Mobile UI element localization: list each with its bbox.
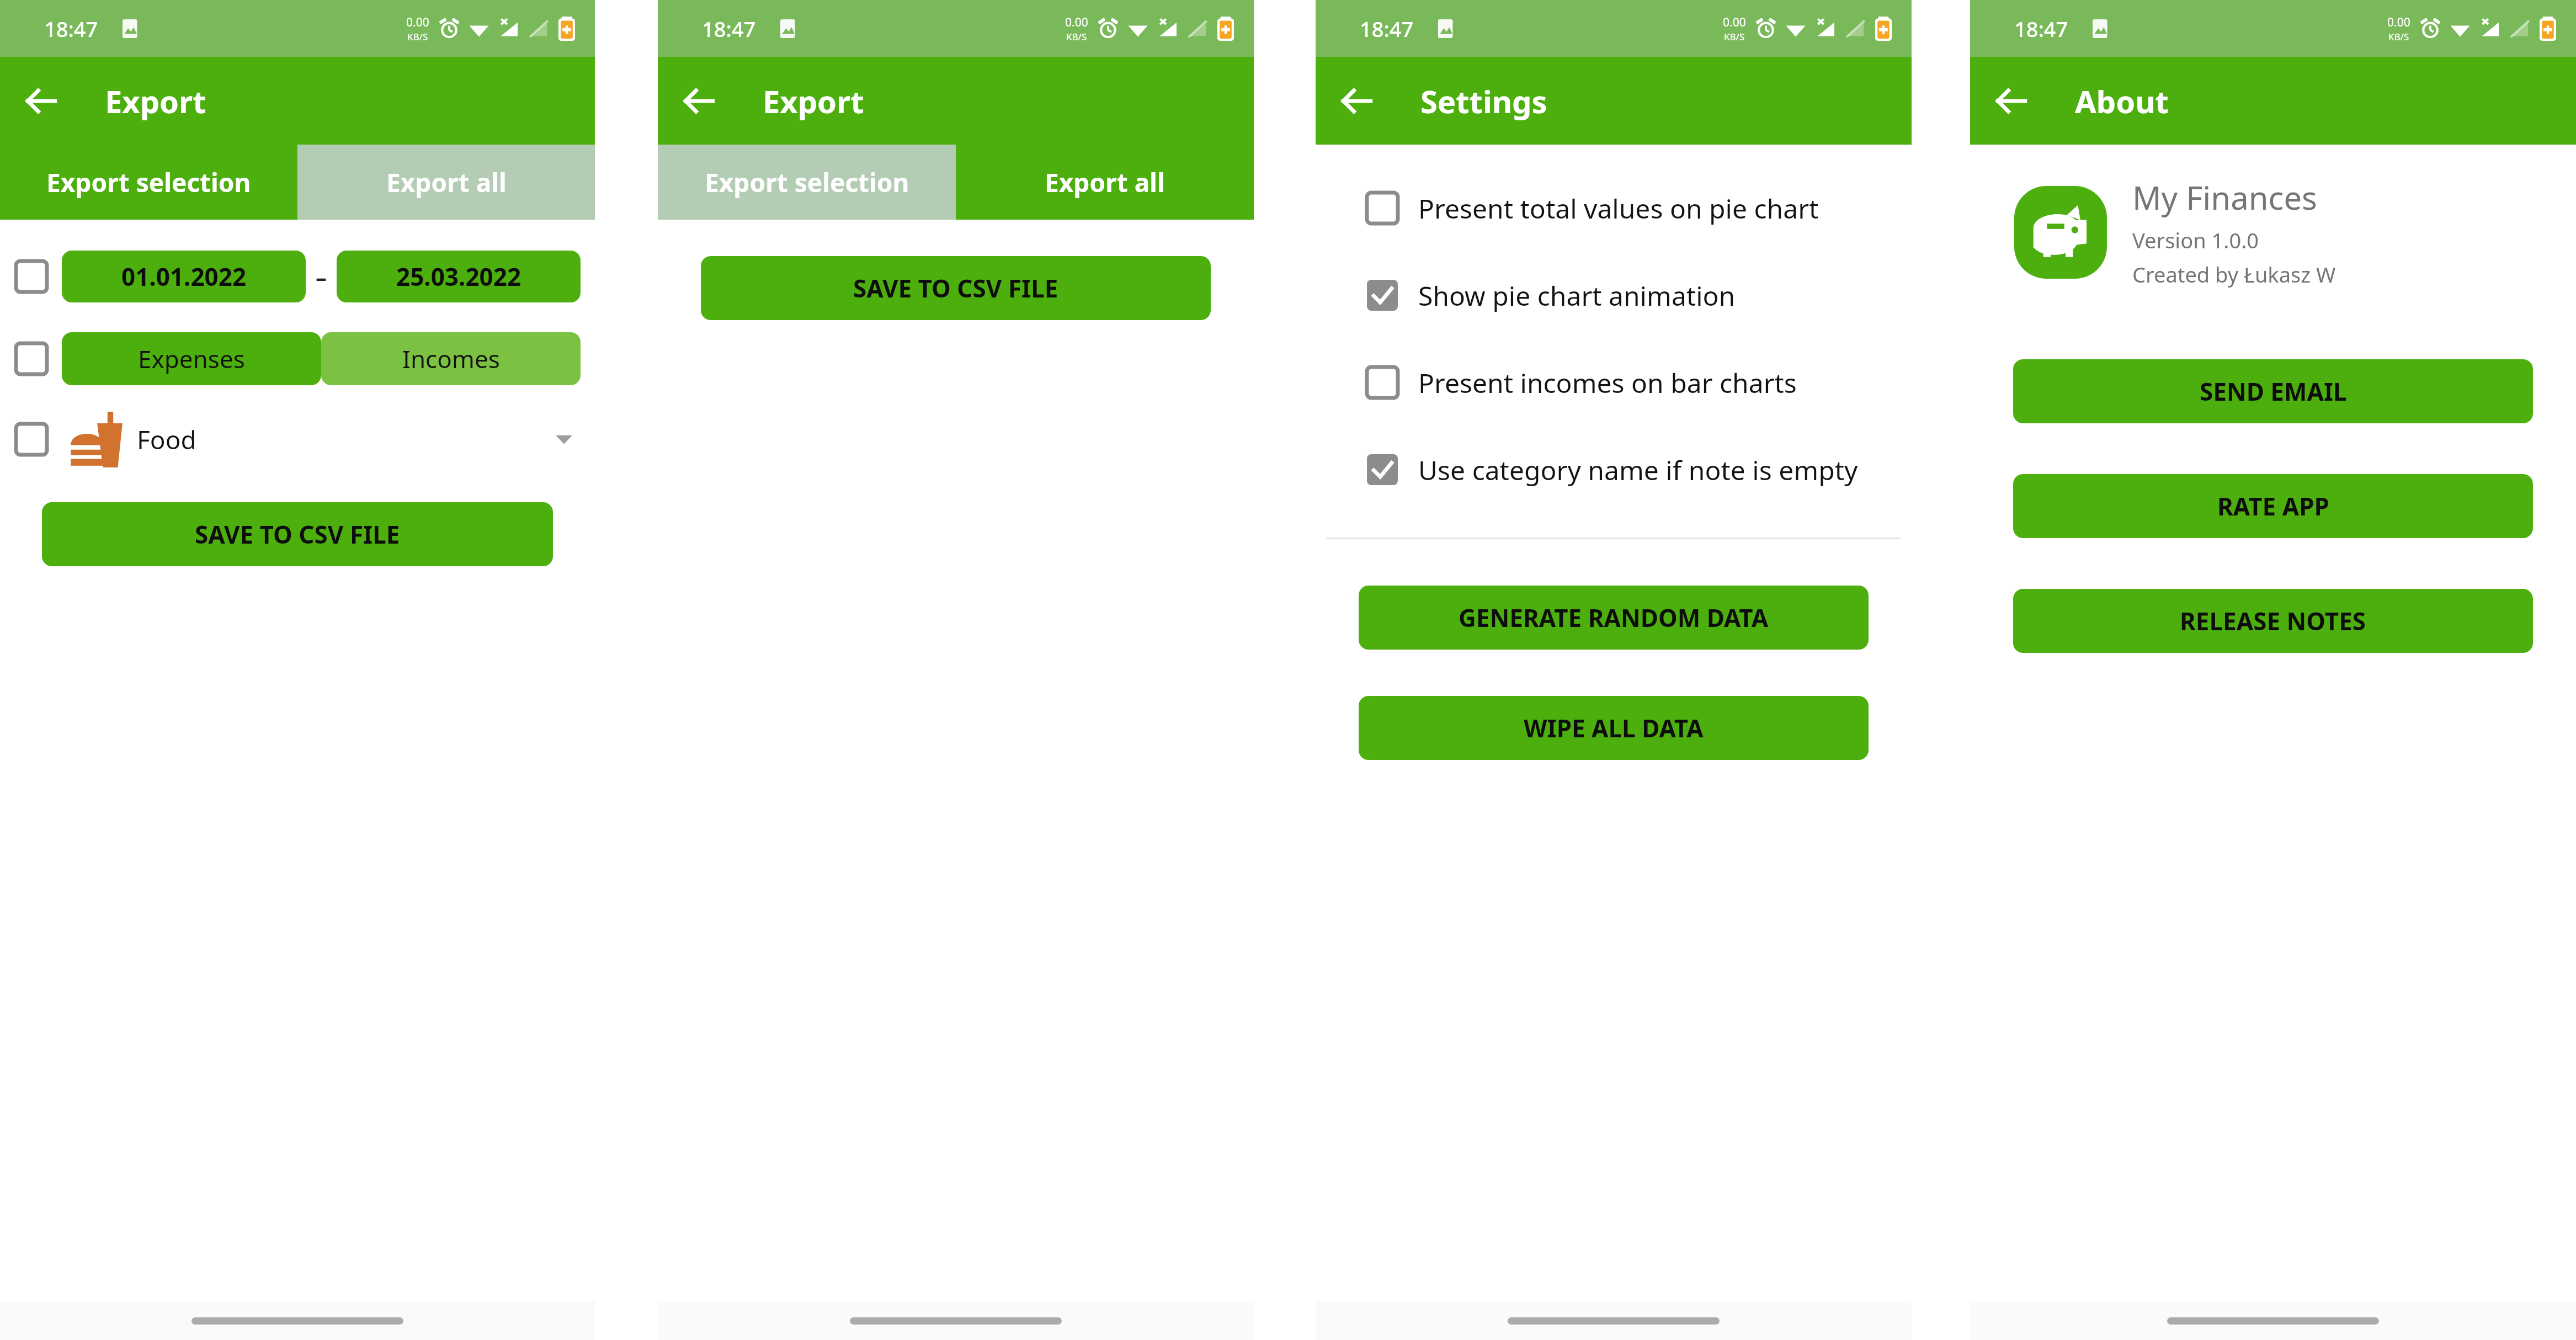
button[interactable]: WIPE ALL DATA <box>1359 696 1869 760</box>
button[interactable]: Incomes <box>321 332 581 385</box>
button[interactable]: Export all <box>297 145 595 220</box>
staticText: – <box>316 262 327 291</box>
button[interactable]: Checkbox <box>1316 426 1912 513</box>
button[interactable]: Expand category <box>547 423 581 456</box>
staticText: KB/S <box>1724 30 1745 43</box>
button[interactable]: Checkbox <box>1316 164 1912 252</box>
button[interactable]: Back <box>1987 76 2036 126</box>
button[interactable]: Export selection <box>658 145 956 220</box>
staticText: Use category name if note is empty <box>1418 452 1858 488</box>
button[interactable]: GENERATE RANDOM DATA <box>1359 586 1869 650</box>
staticText: Incomes <box>402 342 500 375</box>
staticText: 0.00 <box>2387 14 2410 30</box>
staticText: Present incomes on bar charts <box>1418 365 1797 401</box>
staticText: Expenses <box>138 342 245 375</box>
button[interactable]: SAVE TO CSV FILE <box>701 256 1211 320</box>
staticText: Export <box>763 80 864 122</box>
staticText: RATE APP <box>2217 490 2329 523</box>
staticText: KB/S <box>407 30 428 43</box>
staticText: 0.00 <box>1723 14 1746 30</box>
button[interactable]: Expenses <box>62 332 321 385</box>
button[interactable]: Checkbox <box>8 335 55 382</box>
staticText: 18:47 <box>702 14 756 43</box>
button[interactable]: Checkbox <box>8 416 55 463</box>
staticText: My Finances <box>2132 176 2317 219</box>
staticText: Export all <box>386 165 507 200</box>
button[interactable]: Export selection <box>0 145 297 220</box>
staticText: KB/S <box>2388 30 2409 43</box>
staticText: Settings <box>1420 80 1547 122</box>
button[interactable]: Checkbox <box>1359 272 1406 319</box>
staticText: RELEASE NOTES <box>2180 604 2366 637</box>
staticText: Version 1.0.0 <box>2132 226 2259 254</box>
button[interactable]: 25.03.2022 <box>337 251 581 302</box>
staticText: 0.00 <box>406 14 429 30</box>
button[interactable]: Checkbox <box>8 253 55 300</box>
staticText: Export selection <box>46 165 251 200</box>
staticText: Show pie chart animation <box>1418 278 1736 313</box>
button[interactable]: SEND EMAIL <box>2013 359 2533 423</box>
staticText: Present total values on pie chart <box>1418 190 1819 226</box>
button[interactable]: Checkbox <box>1359 184 1406 232</box>
button[interactable]: Back <box>17 76 66 126</box>
button[interactable]: Export all <box>956 145 1254 220</box>
button[interactable]: SAVE TO CSV FILE <box>42 502 553 566</box>
staticText: GENERATE RANDOM DATA <box>1459 601 1769 634</box>
staticText: 25.03.2022 <box>396 260 521 293</box>
staticText: SAVE TO CSV FILE <box>853 272 1058 305</box>
staticText: 18:47 <box>2014 14 2068 43</box>
staticText: Food <box>137 422 547 457</box>
button[interactable]: 01.01.2022 <box>62 251 306 302</box>
staticText: 0.00 <box>1065 14 1088 30</box>
button[interactable]: Checkbox <box>1359 446 1406 493</box>
staticText: Export <box>105 80 206 122</box>
staticText: Export selection <box>705 165 909 200</box>
button[interactable]: Checkbox <box>1316 252 1912 339</box>
staticText: About <box>2075 80 2169 122</box>
staticText: 01.01.2022 <box>121 260 247 293</box>
button[interactable]: RELEASE NOTES <box>2013 589 2533 653</box>
staticText: Created by Łukasz W <box>2132 260 2336 289</box>
button[interactable]: Checkbox <box>1316 339 1912 426</box>
staticText: SEND EMAIL <box>2200 375 2347 408</box>
button[interactable]: RATE APP <box>2013 474 2533 538</box>
button[interactable]: Back <box>1332 76 1382 126</box>
staticText: KB/S <box>1066 30 1087 43</box>
staticText: 18:47 <box>1360 14 1414 43</box>
button[interactable]: Back <box>674 76 724 126</box>
staticText: Export all <box>1045 165 1165 200</box>
staticText: WIPE ALL DATA <box>1524 711 1704 745</box>
staticText: SAVE TO CSV FILE <box>195 518 400 551</box>
staticText: 18:47 <box>44 14 98 43</box>
button[interactable]: Checkbox <box>1359 359 1406 406</box>
